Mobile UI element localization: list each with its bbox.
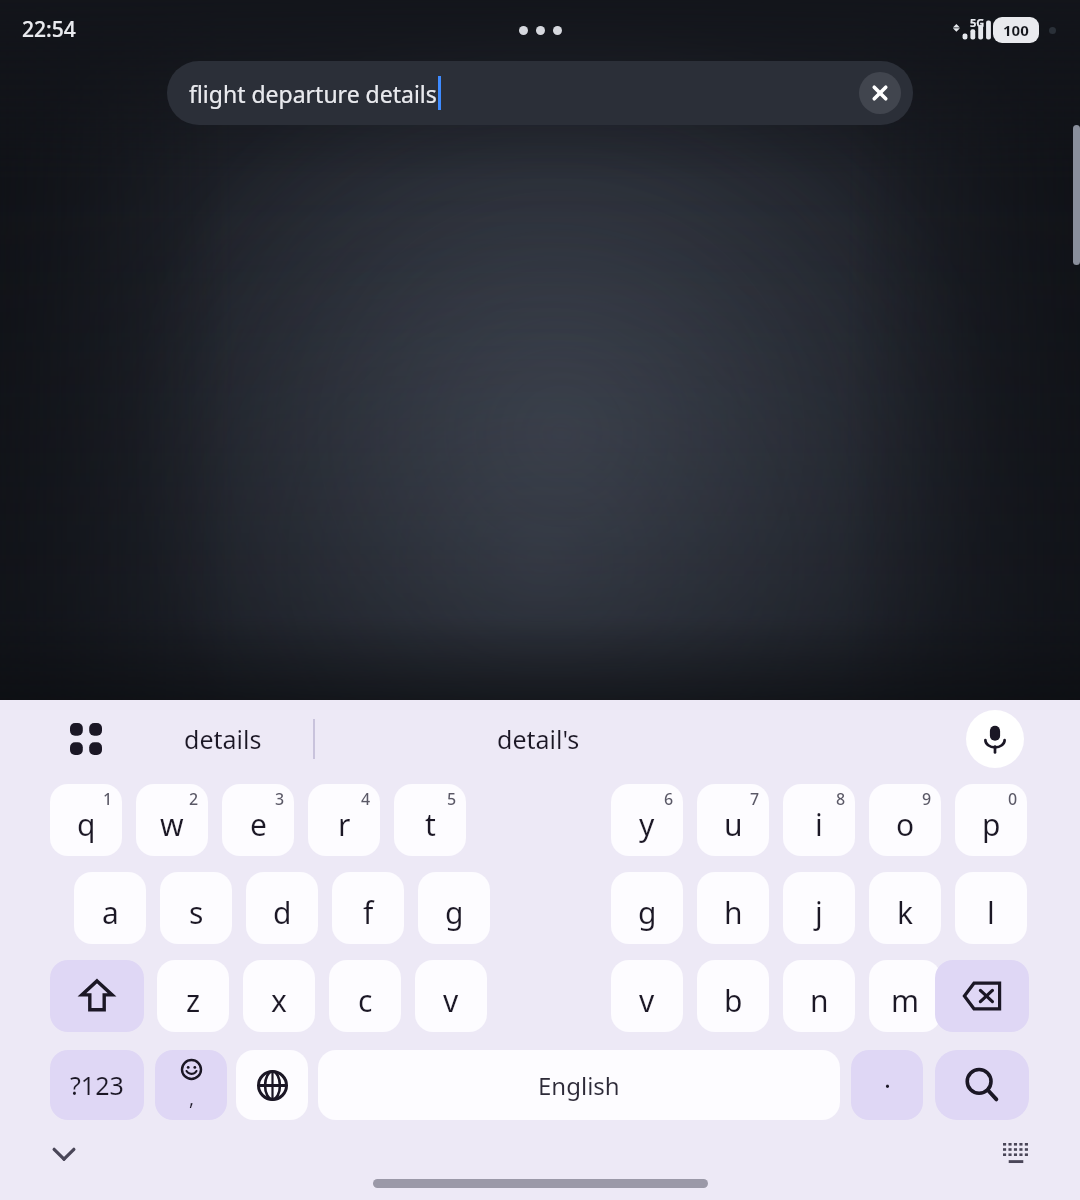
staticText: d <box>273 892 292 933</box>
button[interactable]: b <box>697 960 769 1032</box>
button[interactable]: e <box>222 784 294 856</box>
button[interactable]: k <box>869 872 941 944</box>
staticText: u <box>724 804 743 845</box>
staticText: c <box>358 980 373 1021</box>
button[interactable]: h <box>697 872 769 944</box>
button[interactable]: i <box>783 784 855 856</box>
staticText: v <box>639 980 655 1021</box>
staticText: x <box>271 980 287 1021</box>
button[interactable]: Keyboard settings <box>994 1134 1038 1178</box>
staticText: g <box>638 892 657 933</box>
button[interactable]: ?123 <box>50 1050 144 1120</box>
button[interactable]: t <box>394 784 466 856</box>
button[interactable]: y <box>611 784 683 856</box>
staticText: 7 <box>750 788 760 810</box>
button[interactable]: l <box>955 872 1027 944</box>
button[interactable]: English <box>318 1050 840 1120</box>
staticText: 1 <box>103 788 113 810</box>
staticText: 6 <box>664 788 674 810</box>
staticText: 100 <box>1003 20 1029 40</box>
staticText: 22:54 <box>22 15 76 44</box>
staticText: h <box>724 892 743 933</box>
staticText: 2 <box>189 788 199 810</box>
staticText: 4 <box>361 788 371 810</box>
button[interactable]: m <box>869 960 941 1032</box>
staticText: ?123 <box>70 1068 124 1102</box>
staticText: a <box>102 892 119 933</box>
button[interactable]: z <box>157 960 229 1032</box>
staticText: e <box>250 804 267 845</box>
button[interactable]: c <box>329 960 401 1032</box>
button[interactable]: Clear query <box>859 72 901 114</box>
button[interactable]: Change language <box>236 1050 308 1120</box>
staticText: 0 <box>1008 788 1018 810</box>
button[interactable]: r <box>308 784 380 856</box>
button[interactable]: detail's <box>466 704 611 774</box>
button[interactable]: o <box>869 784 941 856</box>
staticText: f <box>363 892 374 933</box>
button[interactable]: x <box>243 960 315 1032</box>
button[interactable]: j <box>783 872 855 944</box>
button[interactable]: v <box>415 960 487 1032</box>
staticText: q <box>77 804 96 845</box>
staticText: t <box>425 804 436 845</box>
staticText: 3 <box>275 788 285 810</box>
button[interactable]: g <box>418 872 490 944</box>
button[interactable]: Emoji and comma <box>155 1050 227 1120</box>
staticText: w <box>160 804 184 845</box>
button[interactable]: f <box>332 872 404 944</box>
button[interactable]: q <box>50 784 122 856</box>
staticText: details <box>184 722 262 756</box>
button[interactable]: n <box>783 960 855 1032</box>
staticText: 5G <box>970 15 985 30</box>
button[interactable]: a <box>74 872 146 944</box>
button[interactable]: v <box>611 960 683 1032</box>
staticText: j <box>815 892 823 933</box>
staticText: g <box>445 892 464 933</box>
button[interactable]: s <box>160 872 232 944</box>
button[interactable]: Shift <box>50 960 144 1032</box>
staticText: , <box>189 1085 195 1111</box>
staticText: 8 <box>836 788 846 810</box>
button[interactable]: d <box>246 872 318 944</box>
button[interactable]: u <box>697 784 769 856</box>
staticText: z <box>186 980 201 1021</box>
staticText: k <box>897 892 914 933</box>
button[interactable]: Hide keyboard <box>40 1130 88 1178</box>
staticText: detail's <box>497 722 580 756</box>
staticText: p <box>982 804 1001 845</box>
staticText: y <box>639 804 655 845</box>
staticText: l <box>987 892 995 933</box>
button[interactable]: Search <box>935 1050 1029 1120</box>
staticText: 9 <box>922 788 932 810</box>
button[interactable]: w <box>136 784 208 856</box>
button[interactable]: g <box>611 872 683 944</box>
staticText: s <box>189 892 204 933</box>
staticText: v <box>443 980 459 1021</box>
button[interactable]: Toolbar <box>58 711 114 767</box>
button[interactable]: . <box>851 1050 923 1120</box>
staticText: r <box>338 804 351 845</box>
staticText: flight departure details <box>189 78 437 109</box>
staticText: m <box>891 980 920 1021</box>
button[interactable]: flight departure details <box>167 61 913 125</box>
staticText: i <box>815 804 823 845</box>
button[interactable]: Voice input <box>966 710 1024 768</box>
staticText: b <box>724 980 743 1021</box>
button[interactable]: details <box>150 704 295 774</box>
button[interactable]: p <box>955 784 1027 856</box>
button[interactable]: Backspace <box>935 960 1029 1032</box>
staticText: . <box>884 1060 891 1095</box>
staticText: English <box>538 1069 620 1102</box>
staticText: o <box>896 804 915 845</box>
staticText: n <box>810 980 829 1021</box>
staticText: 5 <box>447 788 457 810</box>
